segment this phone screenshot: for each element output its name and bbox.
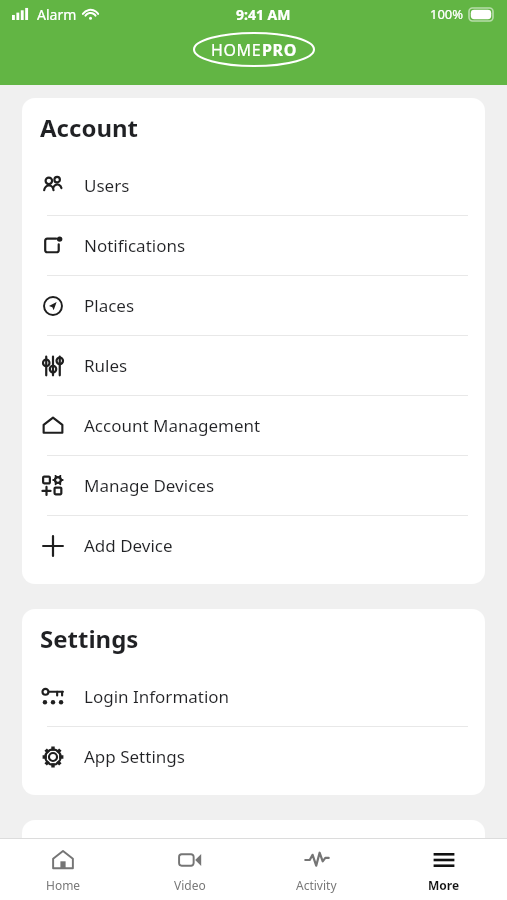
staticText: 100% (430, 5, 464, 23)
staticText: About (40, 833, 113, 866)
staticText: Settings (40, 622, 139, 655)
button[interactable]: More (380, 839, 507, 900)
staticText: Places (84, 294, 135, 317)
staticText: HOME (211, 39, 262, 61)
staticText: Video (174, 877, 206, 893)
staticText: Home (46, 877, 81, 893)
staticText: Activity (296, 877, 337, 893)
button[interactable]: Video (126, 839, 253, 900)
button[interactable]: Login Information (22, 667, 485, 727)
button[interactable]: Home (0, 839, 126, 900)
button[interactable]: Add Device (22, 516, 485, 575)
button[interactable]: Rules (22, 336, 485, 396)
staticText: Login Information (84, 685, 230, 708)
staticText: App Settings (84, 745, 185, 768)
button[interactable]: App Settings (22, 727, 485, 786)
button[interactable]: Account Management (22, 396, 485, 456)
staticText: Users (84, 174, 130, 197)
staticText: Rules (84, 354, 128, 377)
staticText: Alarm (37, 5, 77, 24)
staticText: PRO (262, 39, 297, 61)
staticText: More (428, 877, 460, 893)
button[interactable]: Places (22, 276, 485, 336)
button[interactable]: Activity (253, 839, 380, 900)
staticText: Manage Devices (84, 474, 215, 497)
staticText: 9:41 AM (236, 5, 291, 24)
button[interactable]: Users (22, 156, 485, 216)
staticText: Add Device (84, 534, 173, 557)
staticText: Account (40, 111, 138, 144)
staticText: Notifications (84, 234, 186, 257)
staticText: Account Management (84, 414, 261, 437)
button[interactable]: Notifications (22, 216, 485, 276)
button[interactable]: Manage Devices (22, 456, 485, 516)
